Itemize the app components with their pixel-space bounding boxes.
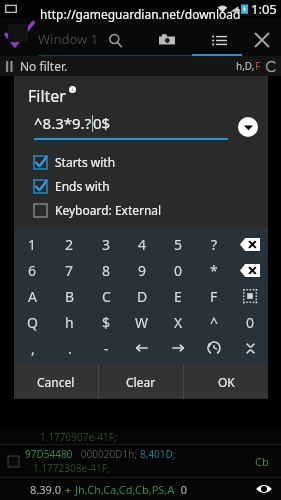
- button[interactable]: 2: [51, 231, 88, 257]
- staticText: 97D54480: [25, 447, 73, 461]
- button[interactable]: Q: [14, 309, 51, 335]
- staticText: h: [65, 313, 74, 332]
- button[interactable]: Cancel: [14, 364, 98, 399]
- staticText: 1.1770907e-41F;: [40, 430, 117, 444]
- staticText: Clear: [126, 374, 156, 390]
- staticText: ^: [210, 313, 219, 332]
- button[interactable]: W: [124, 309, 160, 335]
- staticText: 3: [102, 235, 111, 254]
- button[interactable]: Delete: [232, 231, 268, 257]
- staticText: F: [255, 59, 261, 73]
- button[interactable]: Clear: [99, 364, 183, 399]
- button[interactable]: Select all: [232, 283, 268, 309]
- button[interactable]: OK: [184, 364, 268, 399]
- staticText: .: [68, 339, 72, 358]
- staticText: 7: [65, 261, 74, 280]
- button[interactable]: .: [51, 335, 88, 361]
- button[interactable]: E: [160, 283, 196, 309]
- staticText: 1:05: [251, 0, 277, 18]
- button[interactable]: Move right: [160, 335, 196, 361]
- button[interactable]: 1: [14, 231, 51, 257]
- staticText: Starts with: [55, 154, 116, 170]
- button[interactable]: D: [124, 283, 160, 309]
- staticText: W: [135, 313, 149, 332]
- button[interactable]: Delete: [232, 257, 268, 283]
- staticText: No filter.: [20, 58, 68, 74]
- button[interactable]: Ends with: [14, 174, 268, 198]
- button[interactable]: Camera: [152, 25, 182, 55]
- staticText: Keyboard: External: [55, 202, 162, 218]
- staticText: 8.39.0: [30, 482, 62, 497]
- staticText: C: [102, 287, 111, 306]
- staticText: http://gameguardian.net/download: [40, 6, 241, 22]
- button[interactable]: F: [196, 283, 232, 309]
- staticText: 1.1772308e-41F;: [33, 461, 110, 475]
- button[interactable]: Starts with: [14, 150, 268, 174]
- button[interactable]: 0: [232, 309, 268, 335]
- staticText: ?: [211, 235, 218, 254]
- button[interactable]: Visibility: [255, 480, 273, 498]
- staticText: B: [65, 287, 75, 306]
- button[interactable]: Collapse keyboard: [232, 335, 268, 361]
- button[interactable]: ?: [196, 231, 232, 257]
- button[interactable]: 4: [124, 231, 160, 257]
- staticText: Jh,Ch,Ca,Cd,Cb,PS,A: [75, 482, 175, 497]
- button[interactable]: Info: [69, 86, 76, 93]
- staticText: Ends with: [55, 178, 110, 194]
- staticText: 0: [246, 313, 255, 332]
- staticText: E: [174, 287, 182, 306]
- button[interactable]: X: [160, 309, 196, 335]
- staticText: 0: [174, 261, 183, 280]
- staticText: i: [72, 86, 74, 93]
- staticText: 9: [138, 261, 147, 280]
- button[interactable]: Close: [247, 25, 277, 55]
- button[interactable]: h: [51, 309, 88, 335]
- button[interactable]: 8: [88, 257, 124, 283]
- button[interactable]: C: [88, 283, 124, 309]
- staticText: $: [102, 313, 111, 332]
- button[interactable]: ,: [14, 335, 51, 361]
- staticText: +: [62, 482, 75, 497]
- staticText: Cb: [255, 454, 269, 469]
- staticText: 2: [65, 235, 74, 254]
- button[interactable]: List: [204, 25, 234, 55]
- staticText: Q: [27, 313, 38, 332]
- staticText: 8: [102, 261, 111, 280]
- button[interactable]: Keyboard: External: [14, 198, 268, 222]
- button[interactable]: 6: [14, 257, 51, 283]
- staticText: 0: [175, 482, 188, 497]
- staticText: 1: [28, 235, 37, 254]
- button[interactable]: Search: [100, 25, 130, 55]
- staticText: 8,401D;: [140, 447, 176, 461]
- staticText: A: [28, 287, 37, 306]
- button[interactable]: 3: [88, 231, 124, 257]
- button[interactable]: *: [196, 257, 232, 283]
- button[interactable]: ^: [196, 309, 232, 335]
- button[interactable]: 9: [124, 257, 160, 283]
- button[interactable]: B: [51, 283, 88, 309]
- staticText: 000020D1h;: [73, 447, 140, 461]
- staticText: *: [210, 261, 218, 280]
- staticText: F: [210, 287, 218, 306]
- staticText: Window 1: [38, 30, 99, 48]
- staticText: 0$: [93, 113, 111, 133]
- staticText: OK: [218, 374, 235, 390]
- button[interactable]: A: [14, 283, 51, 309]
- button[interactable]: -: [88, 335, 124, 361]
- staticText: -: [104, 339, 109, 358]
- staticText: X: [174, 313, 183, 332]
- staticText: ,: [31, 339, 35, 358]
- button[interactable]: History: [196, 335, 232, 361]
- staticText: ^8.3*9.?: [34, 113, 92, 133]
- staticText: h,D,: [236, 59, 255, 73]
- button[interactable]: Move left: [124, 335, 160, 361]
- staticText: 4: [138, 235, 147, 254]
- button[interactable]: History dropdown: [238, 117, 258, 137]
- button[interactable]: 7: [51, 257, 88, 283]
- staticText: Filter: [28, 85, 66, 107]
- staticText: Cancel: [37, 374, 75, 390]
- button[interactable]: 0: [160, 257, 196, 283]
- button[interactable]: 5: [160, 231, 196, 257]
- staticText: 5: [174, 235, 183, 254]
- button[interactable]: $: [88, 309, 124, 335]
